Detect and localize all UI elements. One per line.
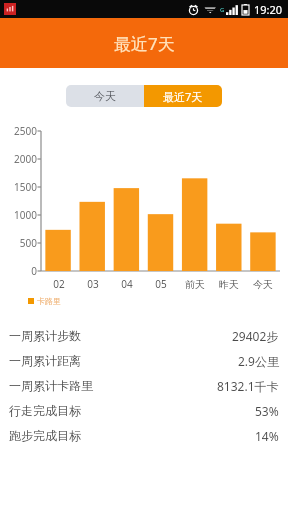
- staticText: 一周累计步数: [9, 328, 81, 343]
- staticText: 最近7天: [114, 32, 175, 55]
- button[interactable]: 一周累计步数: [0, 323, 288, 348]
- staticText: 一周累计卡路里: [9, 378, 93, 393]
- staticText: 行走完成目标: [9, 403, 81, 418]
- staticText: 一周累计距离: [9, 353, 81, 368]
- staticText: 昨天: [219, 278, 239, 291]
- staticText: 今天: [94, 89, 116, 103]
- staticText: 14%: [255, 428, 279, 444]
- other: Signal: [226, 5, 238, 15]
- other: Wi-Fi: [204, 4, 216, 16]
- staticText: 最近7天: [163, 89, 203, 104]
- staticText: 跑步完成目标: [9, 428, 81, 443]
- button[interactable]: 行走完成目标: [0, 398, 288, 423]
- staticText: 今天: [253, 278, 273, 291]
- staticText: G: [220, 6, 225, 14]
- staticText: 02: [53, 277, 65, 291]
- button[interactable]: 今天: [66, 85, 144, 107]
- staticText: 0: [31, 264, 37, 278]
- button[interactable]: 最近7天: [144, 85, 222, 107]
- staticText: 2.9公里: [238, 353, 279, 369]
- button[interactable]: 跑步完成目标: [0, 423, 288, 448]
- staticText: 05: [155, 277, 167, 291]
- staticText: 500: [19, 236, 37, 250]
- staticText: 前天: [185, 278, 205, 291]
- staticText: 8132.1千卡: [217, 378, 279, 394]
- staticText: 04: [121, 277, 133, 291]
- other: Alarm: [188, 4, 199, 15]
- staticText: 1000: [14, 208, 37, 222]
- staticText: 53%: [255, 403, 279, 419]
- button[interactable]: 一周累计距离: [0, 348, 288, 373]
- button[interactable]: 一周累计卡路里: [0, 373, 288, 398]
- staticText: 2000: [14, 152, 37, 166]
- staticText: 卡路里: [37, 296, 61, 306]
- staticText: 29402步: [232, 328, 279, 344]
- other: Battery: [242, 4, 249, 15]
- staticText: 1500: [14, 180, 37, 194]
- staticText: 2500: [14, 124, 37, 138]
- staticText: 19:20: [254, 2, 283, 17]
- staticText: 03: [87, 277, 99, 291]
